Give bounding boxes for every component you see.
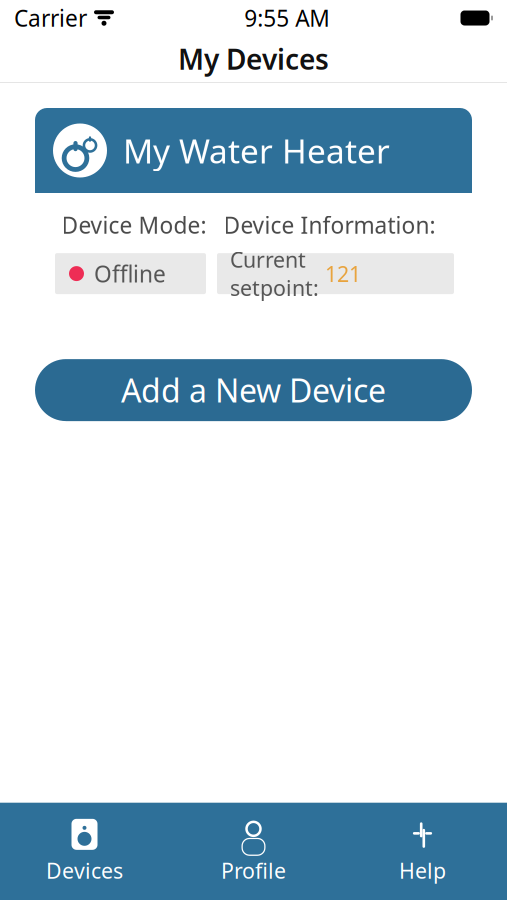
staticText: Offline — [94, 259, 166, 289]
staticText: 121 — [325, 259, 361, 288]
staticText: Add a New Device — [121, 369, 386, 411]
staticText: Devices — [46, 856, 123, 885]
button[interactable]: Add a New Device — [35, 359, 472, 421]
button[interactable]: Devices — [0, 803, 169, 900]
staticText: Carrier — [14, 3, 87, 33]
staticText: Current setpoint: — [230, 245, 325, 302]
button[interactable]: Help — [338, 803, 507, 900]
button[interactable]: My Water Heater — [35, 108, 472, 312]
staticText: My Water Heater — [123, 128, 390, 173]
staticText: Device Mode: — [61, 210, 206, 240]
button[interactable]: Profile — [169, 803, 338, 900]
staticText: 9:55 AM — [244, 3, 330, 33]
staticText: Help — [399, 856, 446, 885]
staticText: Device Information: — [223, 210, 435, 240]
staticText: My Devices — [178, 40, 329, 78]
staticText: Profile — [221, 856, 286, 885]
